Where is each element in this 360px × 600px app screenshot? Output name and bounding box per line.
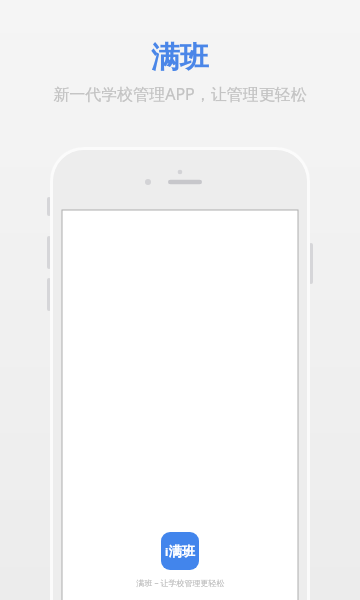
staticText: i (165, 544, 169, 559)
staticText: 新一代学校管理APP，让管理更轻松 (53, 83, 307, 105)
staticText: 满班 (169, 543, 195, 559)
button[interactable]: i (161, 532, 199, 570)
staticText: 满班 – 让学校管理更轻松 (136, 577, 225, 588)
staticText: 满班 (151, 39, 209, 76)
